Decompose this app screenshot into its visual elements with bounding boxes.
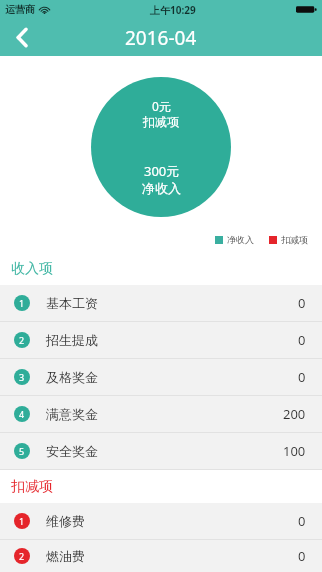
staticText: 安全奖金: [46, 443, 98, 459]
staticText: 2016-04: [125, 25, 197, 51]
staticText: 0: [298, 294, 306, 312]
staticText: 1: [19, 515, 25, 527]
staticText: 300元: [144, 162, 180, 180]
button[interactable]: 5: [0, 433, 322, 469]
staticText: 200: [283, 405, 306, 423]
staticText: 上午10:29: [150, 3, 196, 17]
staticText: 收入项: [11, 260, 53, 278]
staticText: 维修费: [46, 513, 85, 529]
staticText: 0: [298, 547, 306, 565]
staticText: 净收入: [227, 234, 254, 245]
button[interactable]: 2: [0, 322, 322, 358]
button[interactable]: 3: [0, 359, 322, 395]
staticText: 扣减项: [281, 234, 308, 245]
staticText: 运营商: [5, 3, 35, 16]
staticText: 招生提成: [46, 332, 98, 348]
staticText: 燃油费: [46, 548, 85, 564]
button[interactable]: Back: [0, 19, 44, 56]
staticText: 及格奖金: [46, 369, 98, 385]
staticText: 100: [283, 442, 306, 460]
staticText: 3: [19, 371, 25, 383]
button[interactable]: 4: [0, 396, 322, 432]
staticText: 2: [19, 550, 25, 562]
staticText: 1: [19, 297, 25, 309]
staticText: 0: [298, 368, 306, 386]
button[interactable]: 1: [0, 285, 322, 321]
staticText: 满意奖金: [46, 406, 98, 422]
staticText: 净收入: [142, 180, 181, 196]
staticText: 扣减项: [11, 478, 53, 496]
staticText: 5: [19, 445, 25, 457]
staticText: 4: [19, 408, 25, 420]
staticText: 0元: [152, 98, 171, 114]
staticText: 0: [298, 331, 306, 349]
staticText: 2: [19, 334, 25, 346]
staticText: 扣减项: [143, 114, 179, 129]
staticText: 0: [298, 512, 306, 530]
button[interactable]: 2: [0, 540, 322, 572]
staticText: 基本工资: [46, 295, 98, 311]
button[interactable]: 1: [0, 503, 322, 539]
